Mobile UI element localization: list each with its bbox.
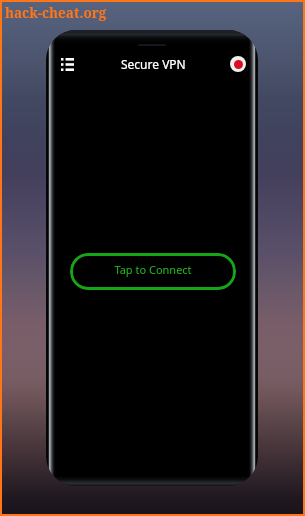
staticText: hack-cheat.org <box>5 4 107 22</box>
button[interactable]: Select country <box>222 49 254 81</box>
button[interactable]: Tap to Connect <box>70 253 236 290</box>
staticText: Tap to Connect <box>114 262 192 277</box>
staticText: Secure VPN <box>121 56 186 72</box>
button[interactable]: Menu <box>50 49 82 81</box>
